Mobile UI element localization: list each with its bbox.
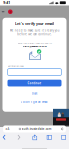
staticText: aA [5, 127, 9, 131]
button[interactable]: Back [21, 91, 47, 96]
staticText: Continue [27, 81, 41, 85]
staticText: Verification code [7, 64, 23, 67]
button[interactable]: I didn't get an email [16, 100, 52, 104]
button[interactable]: Forward [17, 134, 24, 140]
button[interactable]: Bookmarks [46, 134, 52, 140]
button[interactable]: Continue [7, 80, 61, 86]
staticText: hello@example.com [22, 44, 46, 48]
button[interactable]: Page settings [5, 127, 9, 131]
button[interactable]: Reload [61, 128, 64, 130]
staticText: We need to make sure it's really you bef… [9, 29, 59, 36]
button[interactable]: Tabs [61, 134, 67, 140]
button[interactable]: Share [32, 134, 38, 140]
staticText: Let's verify your email [15, 21, 54, 26]
staticText: auth.trustedsite.com [22, 127, 52, 131]
staticText: I didn't get an email [21, 100, 48, 104]
button[interactable]: Back [2, 134, 9, 140]
staticText: Enter the 6-digit code we sent to [17, 41, 51, 45]
staticText: 9:41 [3, 0, 10, 5]
staticText: Back [32, 92, 37, 95]
